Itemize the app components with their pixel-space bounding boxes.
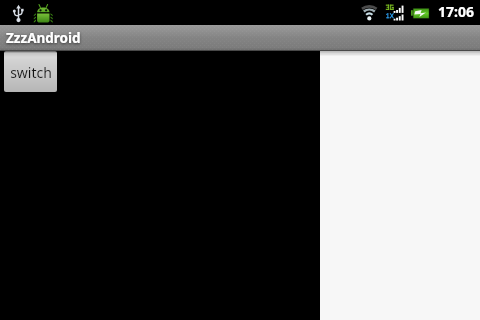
- other: USB connected: [13, 4, 25, 23]
- staticText: switch: [10, 63, 52, 82]
- staticText: ZzzAndroid: [6, 29, 81, 47]
- other: USB debugging enabled: [33, 3, 54, 23]
- staticText: 17:06: [438, 2, 474, 21]
- button[interactable]: switch: [4, 51, 57, 92]
- other: Battery charging: [411, 8, 430, 19]
- other: Wi-Fi signal: [361, 5, 377, 21]
- other: 3G and 1X mobile signal: [385, 4, 405, 21]
